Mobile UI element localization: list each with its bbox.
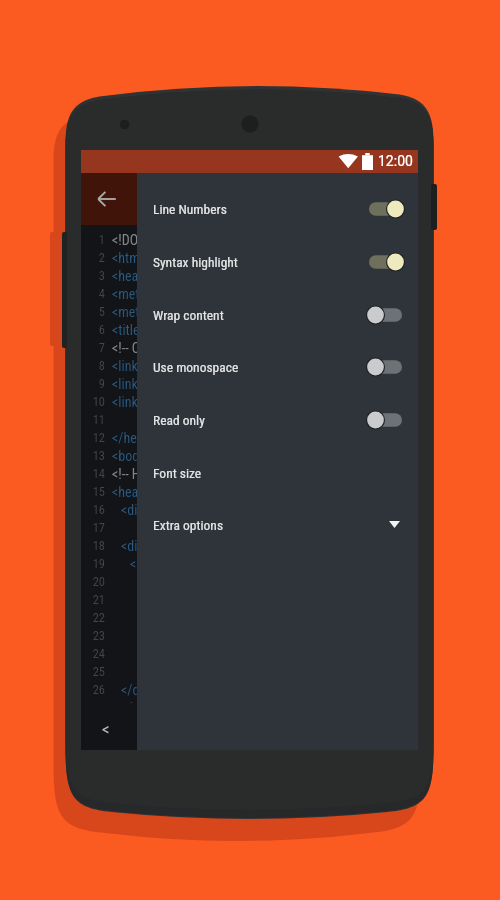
staticText: 15 [81, 484, 105, 499]
staticText: 14 [81, 466, 105, 481]
button[interactable]: Wrap content [137, 288, 418, 341]
staticText: 7 [81, 340, 105, 355]
staticText: Syntax highlight [153, 254, 238, 270]
staticText: <meta charset="UTF-8"> [112, 286, 246, 302]
staticText: </head> [112, 430, 157, 446]
button[interactable]: Line Numbers [137, 182, 418, 235]
staticText: 8 [81, 358, 105, 373]
staticText: Font size [153, 465, 202, 481]
staticText: Use monospace [153, 359, 239, 375]
staticText: 19 [81, 556, 105, 571]
staticText: 6 [81, 322, 105, 337]
staticText: 24 [81, 646, 105, 661]
button[interactable]: Back [81, 173, 137, 225]
staticText: 12 [81, 430, 105, 445]
staticText: Extra options [153, 517, 224, 533]
staticText: </div> [121, 682, 156, 698]
staticText: <body> [112, 448, 152, 464]
staticText: <head> [112, 268, 152, 284]
staticText: 25 [81, 664, 105, 679]
button[interactable]: Syntax highlight [137, 235, 418, 288]
staticText: 13 [81, 448, 105, 463]
staticText: 12:00 [378, 153, 413, 169]
staticText: 21 [81, 592, 105, 607]
staticText: 2 [81, 250, 105, 265]
staticText: 1 [81, 232, 105, 247]
staticText: 16 [81, 502, 105, 517]
staticText: 11 [81, 412, 105, 427]
button[interactable]: Extra options [137, 498, 418, 551]
staticText: <header class="main"> [112, 484, 237, 500]
staticText: <!-- Comment here --> [112, 340, 230, 356]
staticText: 3 [81, 268, 105, 283]
button[interactable]: Read only [137, 393, 418, 446]
staticText: <title>Hello</title> [112, 322, 214, 338]
staticText: <div class="row"> [121, 538, 219, 554]
staticText: Read only [153, 412, 205, 428]
staticText: 22 [81, 610, 105, 625]
staticText: < [102, 719, 110, 739]
staticText: <!-- Header --> [112, 466, 189, 482]
staticText: <!DOCTYPE html> [112, 232, 210, 248]
staticText: 4 [81, 286, 105, 301]
staticText: 18 [81, 538, 105, 553]
staticText: Line Numbers [153, 201, 227, 217]
staticText: <html> [112, 250, 150, 266]
button[interactable]: Use monospace [137, 340, 418, 393]
staticText: 9 [81, 376, 105, 391]
staticText: <meta name="viewport"> [112, 304, 250, 320]
staticText: </div> [121, 700, 156, 703]
staticText: <div id="wrap"> [121, 502, 206, 518]
staticText: Wrap content [153, 307, 224, 323]
staticText: <link rel="stylesheet"> [112, 376, 234, 392]
staticText: 20 [81, 574, 105, 589]
staticText: 26 [81, 682, 105, 697]
staticText: <link rel="stylesheet"> [112, 358, 234, 374]
staticText: 10 [81, 394, 105, 409]
button[interactable]: Font size [137, 446, 418, 499]
staticText: <span>Hi</span> [130, 556, 227, 572]
staticText: 5 [81, 304, 105, 319]
staticText: 17 [81, 520, 105, 535]
staticText: <link rel="stylesheet"> [112, 394, 234, 410]
staticText: 23 [81, 628, 105, 643]
